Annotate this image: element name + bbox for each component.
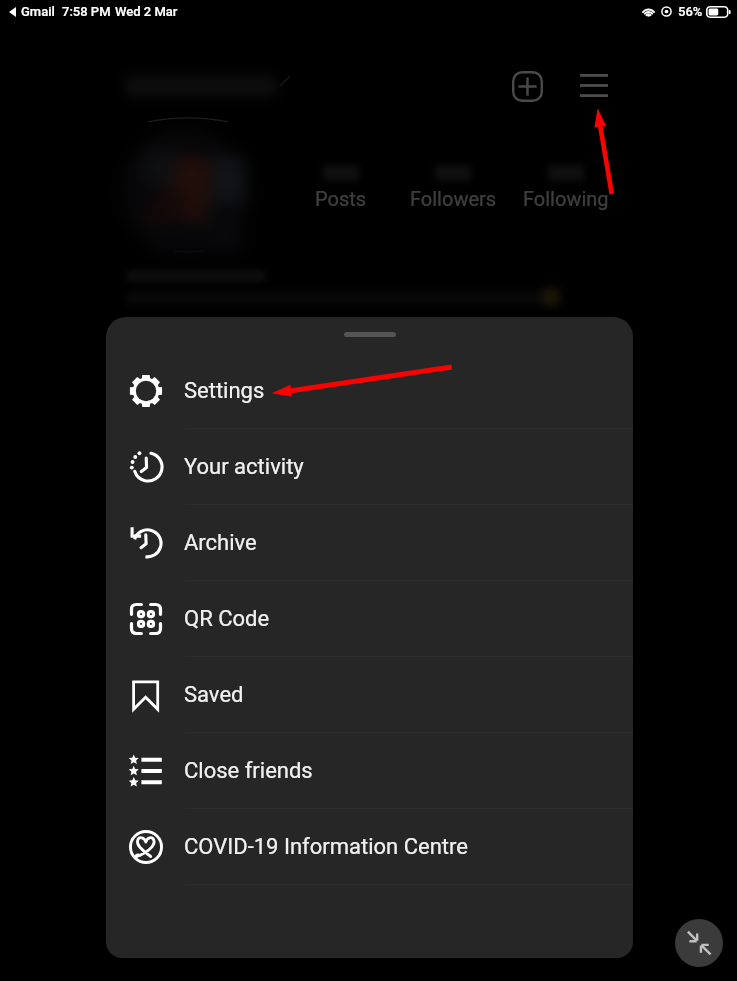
staticText: Following — [523, 187, 609, 210]
button[interactable]: Settings — [106, 353, 633, 429]
staticText: Settings — [184, 378, 265, 404]
staticText: Archive — [184, 530, 257, 556]
staticText: Posts — [315, 187, 367, 210]
staticText: 56% — [678, 4, 703, 19]
button[interactable]: Archive — [106, 505, 633, 581]
staticText: 7:58 PM — [62, 4, 111, 19]
staticText: Saved — [184, 682, 244, 708]
button[interactable]: Close friends — [106, 733, 633, 809]
button[interactable]: Saved — [106, 657, 633, 733]
button[interactable]: COVID-19 Information Centre — [106, 809, 633, 885]
button[interactable]: New post — [503, 62, 551, 110]
button[interactable]: Collapse — [675, 919, 723, 967]
staticText: Close friends — [184, 758, 313, 784]
button[interactable]: QR Code — [106, 581, 633, 657]
staticText: COVID-19 Information Centre — [184, 834, 468, 860]
button[interactable]: Your activity — [106, 429, 633, 505]
staticText: Followers — [410, 187, 497, 210]
staticText: Wed 2 Mar — [115, 4, 178, 19]
button[interactable]: Menu — [570, 61, 618, 109]
staticText: QR Code — [184, 606, 270, 632]
staticText: Your activity — [184, 454, 304, 480]
staticText: Gmail — [21, 4, 55, 19]
